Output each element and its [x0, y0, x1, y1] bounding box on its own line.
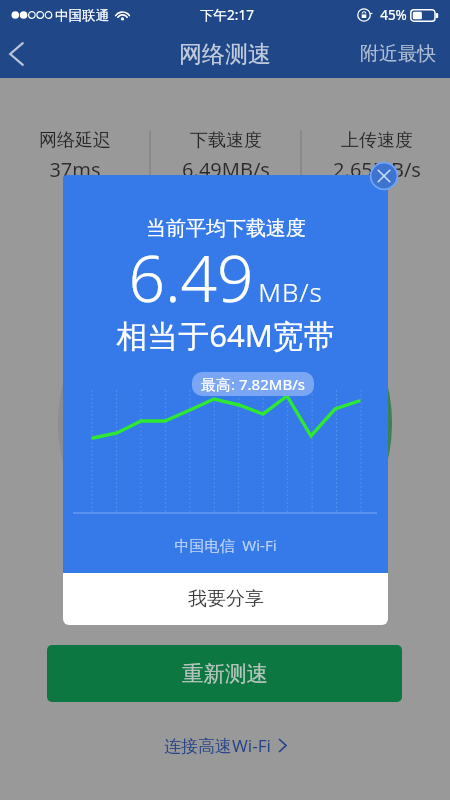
staticText: 下午2:17 — [200, 6, 254, 24]
staticText: 附近最快 — [360, 42, 436, 66]
button[interactable]: 我要分享 — [63, 573, 388, 625]
staticText: 我要分享 — [188, 587, 264, 611]
staticText: 连接高速Wi-Fi — [164, 734, 271, 757]
staticText: 45% — [380, 6, 407, 24]
staticText: 中国联通 — [55, 7, 109, 24]
staticText: 上传速度 — [341, 129, 413, 152]
staticText: 2.65MB/s — [333, 156, 421, 183]
staticText: 37ms — [49, 156, 101, 183]
staticText: 相当于64M宽带 — [116, 314, 335, 356]
staticText: 最高: 7.82MB/s — [201, 374, 305, 394]
button[interactable]: 附近最快 — [360, 42, 436, 66]
button[interactable]: 重新测速 — [47, 645, 402, 702]
staticText: 网络延迟 — [39, 129, 111, 152]
staticText: 当前平均下载速度 — [146, 216, 306, 241]
staticText: 重新测速 — [182, 660, 268, 687]
button[interactable]: Back — [0, 31, 32, 77]
staticText: 下载速度 — [190, 129, 262, 152]
staticText: MB/s — [258, 274, 323, 309]
staticText: 6.49MB/s — [182, 156, 270, 183]
button[interactable]: 连接高速Wi-Fi — [0, 734, 450, 757]
staticText: 6.49 — [128, 234, 254, 321]
staticText: 网络测速 — [179, 40, 271, 69]
staticText: 中国电信 Wi-Fi — [174, 535, 277, 555]
button[interactable]: Close — [369, 161, 399, 191]
